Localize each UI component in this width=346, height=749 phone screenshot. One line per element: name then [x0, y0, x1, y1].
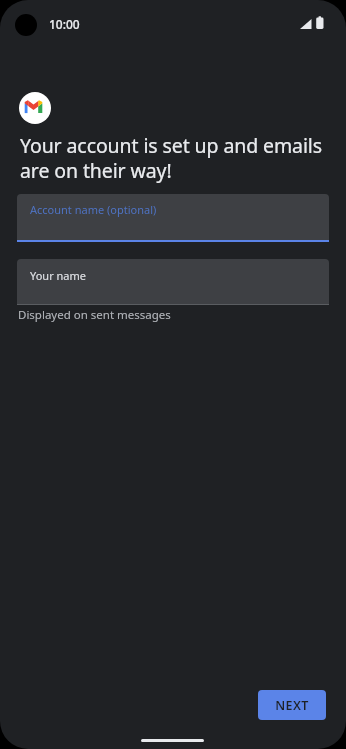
button[interactable]: Account name (optional): [17, 194, 329, 242]
staticText: Displayed on sent messages: [18, 307, 171, 323]
button[interactable]: Your name: [17, 259, 329, 305]
staticText: Your name: [30, 268, 86, 283]
staticText: NEXT: [275, 697, 309, 714]
staticText: Your account is set up and emails are on…: [20, 132, 340, 183]
staticText: 10:00: [49, 16, 80, 32]
button[interactable]: NEXT: [258, 690, 326, 720]
staticText: Account name (optional): [30, 202, 157, 217]
